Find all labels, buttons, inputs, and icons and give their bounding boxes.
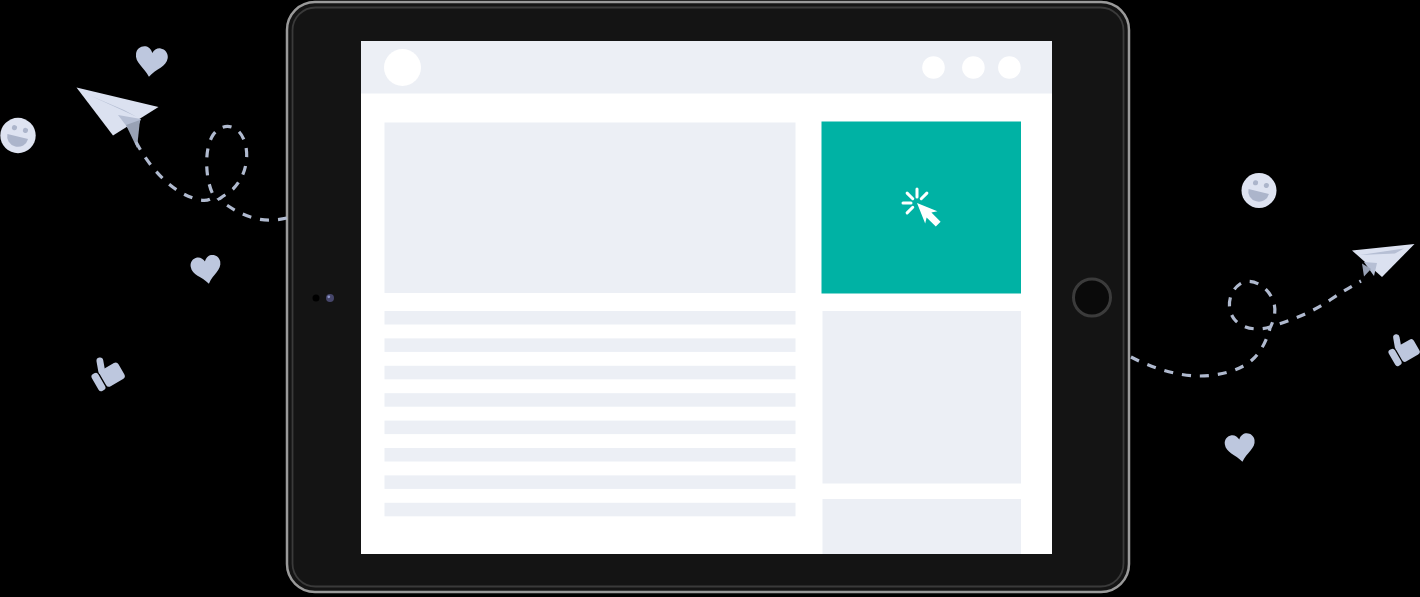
button[interactable] — [1073, 278, 1112, 317]
button[interactable] — [384, 49, 421, 86]
button[interactable] — [821, 121, 1021, 293]
button[interactable] — [920, 54, 1021, 81]
